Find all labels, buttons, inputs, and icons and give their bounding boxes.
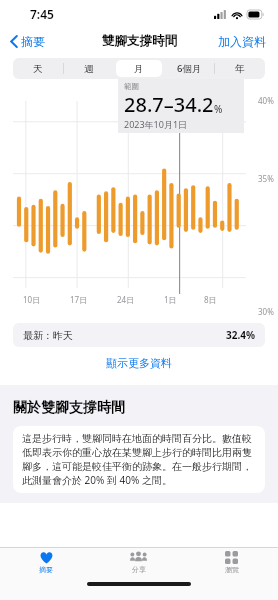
button[interactable]: 加入資料 [206, 30, 278, 53]
staticText: 這是步行時，雙腳同時在地面的時間百分比。數值較低即表示你的重心放在某雙腳上步行的… [22, 432, 256, 487]
staticText: 1日 [164, 294, 177, 305]
button[interactable]: 6個月 [166, 60, 212, 77]
staticText: 40% [258, 95, 274, 106]
staticText: 關於雙腳支撐時間 [13, 399, 125, 417]
staticText: 瀏覽 [225, 565, 239, 574]
staticText: 週 [84, 63, 94, 75]
staticText: 分享 [132, 565, 146, 574]
button[interactable]: 最新：昨天 [13, 323, 265, 347]
button[interactable]: 摘要 [0, 548, 92, 576]
staticText: 天 [33, 63, 43, 75]
button[interactable]: 天 [15, 60, 61, 77]
staticText: 摘要 [39, 565, 53, 574]
button[interactable]: 週 [66, 60, 112, 77]
staticText: 24日 [117, 294, 135, 305]
button[interactable]: 瀏覽 [185, 548, 278, 576]
staticText: 17日 [70, 294, 88, 305]
other: 摘要 [39, 551, 54, 564]
staticText: 雙腳支撐時間 [102, 33, 177, 49]
staticText: 年 [235, 63, 245, 75]
staticText: 6個月 [177, 62, 202, 75]
other: 分享 [130, 551, 147, 564]
staticText: 最新：昨天 [23, 329, 73, 342]
staticText: 32.4% [226, 328, 255, 342]
button[interactable]: 年 [217, 60, 263, 77]
staticText: 28.7–34.2 [124, 91, 214, 118]
staticText: 35% [258, 173, 274, 184]
staticText: 7:45 [30, 6, 54, 22]
staticText: 月 [134, 63, 144, 75]
other: 瀏覽 [225, 551, 238, 564]
button[interactable]: 顯示更多資料 [90, 350, 188, 376]
staticText: 30% [258, 306, 274, 317]
staticText: 範圍 [124, 82, 139, 91]
button[interactable]: 月 [116, 60, 162, 77]
staticText: 摘要 [21, 34, 45, 49]
staticText: 2023年10月1日 [124, 118, 188, 130]
staticText: % [214, 102, 223, 116]
staticText: 10日 [23, 294, 41, 305]
button[interactable]: 分享 [92, 548, 185, 576]
button[interactable]: 摘要 [8, 31, 47, 52]
staticText: 8日 [204, 294, 217, 305]
